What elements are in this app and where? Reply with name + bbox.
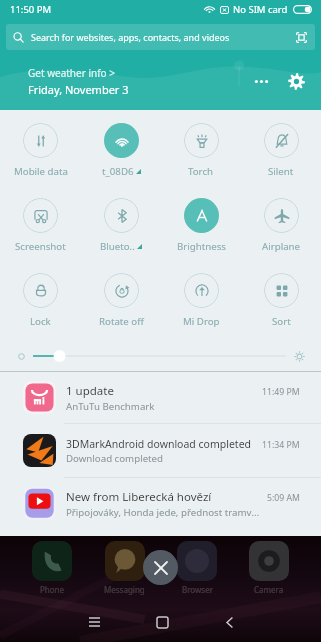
staticText: Get weather info > xyxy=(28,66,115,80)
button[interactable]: Airplane xyxy=(241,191,321,266)
staticText: Messaging xyxy=(104,584,145,595)
button[interactable]: 3DMarkAndroid download completed xyxy=(0,424,321,477)
button[interactable]: Settings xyxy=(282,67,310,95)
button[interactable]: Brightness xyxy=(161,191,241,266)
staticText: Camera xyxy=(254,584,284,595)
staticText: Lock xyxy=(30,315,51,328)
staticText: Připojováky, Honda jede, přednost tramva… xyxy=(66,506,261,519)
staticText: AnTuTu Benchmark xyxy=(66,400,155,413)
button[interactable]: Menu xyxy=(75,603,113,641)
staticText: 11:34 PM xyxy=(262,439,300,451)
staticText: Download completed xyxy=(66,452,164,465)
staticText: Friday, November 3 xyxy=(28,82,129,97)
staticText: Rotate off xyxy=(99,315,144,328)
button[interactable]: Close xyxy=(143,550,178,585)
button[interactable]: Screenshot xyxy=(0,191,81,266)
button[interactable]: Browser xyxy=(177,541,217,595)
staticText: 1 update xyxy=(66,383,114,399)
staticText: 11:49 PM xyxy=(262,386,300,398)
staticText: Torch xyxy=(188,165,214,178)
staticText: Brightness xyxy=(177,240,226,253)
button[interactable]: Phone xyxy=(32,541,72,595)
button[interactable]: Mi Drop xyxy=(161,266,241,341)
staticText: Silent xyxy=(268,165,294,178)
button[interactable]: Home xyxy=(143,603,181,641)
staticText: Sort xyxy=(272,315,291,328)
staticText: 5:09 AM xyxy=(267,492,300,504)
button[interactable]: Mobile data xyxy=(0,116,81,191)
button[interactable]: More options xyxy=(248,68,274,94)
button[interactable]: Blueto.. xyxy=(81,191,161,266)
button[interactable]: 1 update xyxy=(0,372,321,423)
staticText: 3DMarkAndroid download completed xyxy=(66,437,252,451)
staticText: t_08D6 xyxy=(102,165,134,178)
staticText: Search for websites, apps, contacts, and… xyxy=(31,31,230,43)
button[interactable]: Search for websites, apps, contacts, and… xyxy=(6,24,315,50)
staticText: Mobile data xyxy=(14,165,68,178)
button[interactable]: Messaging xyxy=(104,541,145,595)
button[interactable]: Camera xyxy=(249,541,289,595)
button[interactable]: Back xyxy=(210,603,248,641)
button[interactable]: Sort xyxy=(241,266,321,341)
staticText: 11:50 PM xyxy=(10,3,52,16)
button[interactable]: Rotate off xyxy=(81,266,161,341)
staticText: New from Liberecká hovězí xyxy=(66,489,212,505)
staticText: Mi Drop xyxy=(183,315,220,328)
button[interactable]: Torch xyxy=(161,116,241,191)
staticText: Screenshot xyxy=(15,240,66,253)
button[interactable]: Get weather info > xyxy=(28,66,248,97)
button[interactable]: New from Liberecká hovězí xyxy=(0,478,321,529)
staticText: Blueto.. xyxy=(100,240,135,253)
staticText: No SIM card xyxy=(233,3,288,16)
other: Scan xyxy=(296,32,307,43)
staticText: Browser xyxy=(182,584,213,595)
button[interactable]: Lock xyxy=(0,266,81,341)
button[interactable]: t_08D6 xyxy=(81,116,161,191)
staticText: Airplane xyxy=(262,240,301,253)
button[interactable]: Silent xyxy=(241,116,321,191)
staticText: Phone xyxy=(40,584,65,595)
